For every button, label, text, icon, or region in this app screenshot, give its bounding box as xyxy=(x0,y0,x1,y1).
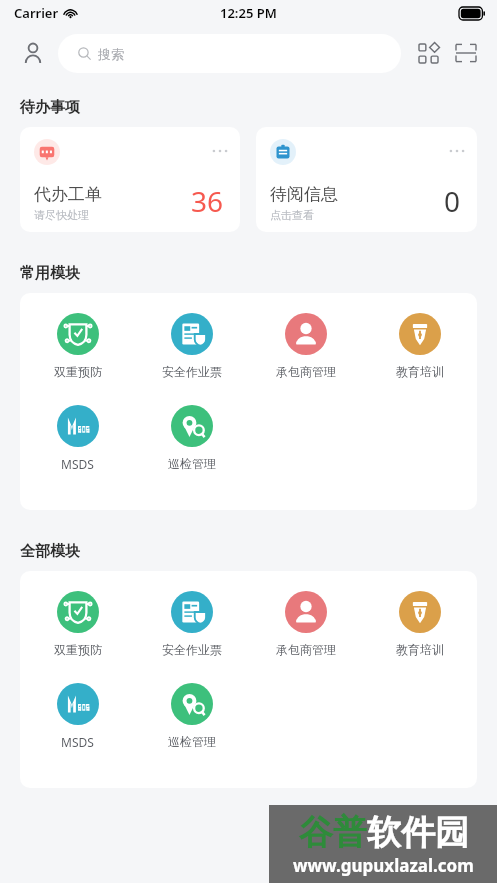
staticText: www.gupuxlazal.com xyxy=(293,854,474,877)
staticText: 待办事项 xyxy=(20,98,80,117)
staticText: 常用模块 xyxy=(20,264,80,283)
button[interactable]: 承包商管理 xyxy=(249,311,363,381)
staticText: 0 xyxy=(444,182,461,220)
staticText: 全部模块 xyxy=(20,542,80,561)
button[interactable]: 安全作业票 xyxy=(135,311,249,381)
button[interactable]: 承包商管理 xyxy=(249,589,363,659)
staticText: MSDS xyxy=(61,734,94,750)
staticText: 请尽快处理 xyxy=(34,208,89,222)
staticText: 12:25 PM xyxy=(220,4,277,22)
staticText: 双重预防 xyxy=(54,642,102,657)
button[interactable]: 代办工单 xyxy=(20,127,240,232)
button[interactable]: 待阅信息 xyxy=(256,127,477,232)
staticText: 巡检管理 xyxy=(168,734,216,749)
button[interactable]: Apps xyxy=(411,36,445,70)
button[interactable]: MSDS xyxy=(20,681,135,752)
staticText: 双重预防 xyxy=(54,364,102,379)
button[interactable]: 搜索 xyxy=(58,34,401,73)
button[interactable]: 巡检管理 xyxy=(135,403,249,473)
button[interactable]: 双重预防 xyxy=(20,311,135,381)
staticText: MSDS xyxy=(61,456,94,472)
button[interactable]: Profile xyxy=(14,34,52,72)
staticText: 点击查看 xyxy=(270,208,314,222)
staticText: 教育培训 xyxy=(396,364,444,379)
staticText: 承包商管理 xyxy=(276,642,336,657)
staticText: 安全作业票 xyxy=(162,364,222,379)
staticText: 承包商管理 xyxy=(276,364,336,379)
button[interactable]: 双重预防 xyxy=(20,589,135,659)
button[interactable]: MSDS xyxy=(20,403,135,474)
staticText: 教育培训 xyxy=(396,642,444,657)
button[interactable]: 教育培训 xyxy=(363,311,477,381)
staticText: 安全作业票 xyxy=(162,642,222,657)
staticText: 谷普 xyxy=(299,811,367,854)
staticText: 巡检管理 xyxy=(168,456,216,471)
button[interactable]: Scan xyxy=(449,36,483,70)
button[interactable]: 安全作业票 xyxy=(135,589,249,659)
staticText: Carrier xyxy=(14,4,59,22)
button[interactable]: 巡检管理 xyxy=(135,681,249,751)
staticText: 软件园 xyxy=(367,811,469,854)
button[interactable]: 教育培训 xyxy=(363,589,477,659)
staticText: 搜索 xyxy=(98,46,124,62)
staticText: 36 xyxy=(191,182,224,220)
staticText: 待阅信息 xyxy=(270,184,338,205)
staticText: 代办工单 xyxy=(34,184,102,205)
